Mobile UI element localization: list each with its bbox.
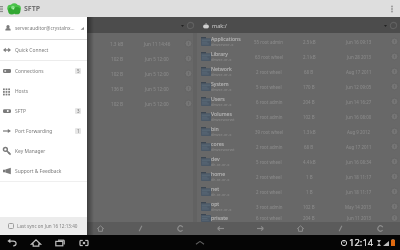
button[interactable]: File info: [184, 39, 193, 48]
button[interactable]: Open navigation drawer: [0, 0, 6, 17]
staticText: 2.1 kB: [303, 54, 316, 60]
button[interactable]: Status: 12:14: [341, 236, 397, 249]
button[interactable]: net: [197, 184, 400, 199]
button[interactable]: Support & Feedback: [0, 161, 87, 181]
button[interactable]: File info: [184, 99, 193, 108]
button[interactable]: Last sync on Jun 16 12:13:40: [0, 217, 87, 235]
button[interactable]: cores: [197, 139, 400, 154]
button[interactable]: File info: [390, 214, 399, 222]
button[interactable]: Key Manager: [0, 141, 87, 161]
staticText: Port Forwarding: [15, 128, 53, 135]
staticText: 3 root admin: [256, 114, 283, 120]
button[interactable]: Show notifications: [193, 236, 207, 250]
button[interactable]: Root folder: [320, 222, 360, 235]
button[interactable]: File info: [184, 84, 193, 93]
button[interactable]: File info: [390, 172, 399, 181]
staticText: cores: [211, 140, 225, 147]
button[interactable]: Back: [0, 235, 24, 250]
staticText: 68 B: [304, 144, 314, 150]
button[interactable]: File info: [184, 69, 193, 78]
button[interactable]: Screenshot: [72, 235, 96, 250]
button[interactable]: Copy to local: [200, 222, 240, 235]
button[interactable]: Root folder: [120, 222, 160, 235]
staticText: 68 B: [304, 69, 314, 75]
button[interactable]: home: [197, 169, 400, 184]
button[interactable]: File info: [390, 67, 399, 76]
button[interactable]: File info: [390, 142, 399, 151]
staticText: Aug 17 2011: [346, 144, 372, 150]
staticText: Jun 5 12:00: [145, 71, 169, 77]
button[interactable]: 102 B: [0, 96, 193, 111]
staticText: Jun 16 09:13: [346, 39, 372, 45]
staticText: 39 root wheel: [255, 129, 284, 135]
button[interactable]: File info: [390, 157, 399, 166]
button[interactable]: File info: [390, 37, 399, 46]
button[interactable]: Home: [80, 222, 120, 235]
button[interactable]: File info: [390, 202, 399, 211]
button[interactable]: Network: [197, 64, 400, 79]
button[interactable]: File info: [390, 112, 399, 121]
button[interactable]: File info: [390, 97, 399, 106]
button[interactable]: More options: [384, 0, 400, 17]
button[interactable]: 102 B: [0, 51, 193, 66]
button[interactable]: File info: [390, 82, 399, 91]
staticText: dr-xr-xr-x: [211, 177, 230, 183]
button[interactable]: File info: [390, 187, 399, 196]
button[interactable]: Hosts: [0, 81, 87, 101]
staticText: drwxr-xr-x: [211, 57, 232, 63]
button[interactable]: Home: [280, 222, 320, 235]
button[interactable]: Refresh: [160, 222, 200, 235]
button[interactable]: dev: [197, 154, 400, 169]
button[interactable]: opt: [197, 199, 400, 214]
button[interactable]: Connections: [0, 61, 87, 81]
staticText: Jun 5 12:00: [145, 56, 169, 62]
button[interactable]: Copy to remote: [240, 222, 280, 235]
button[interactable]: server.auditor@crystalnx...: [0, 17, 87, 39]
staticText: Jun 16 08:34: [346, 159, 372, 165]
staticText: System: [211, 80, 229, 87]
staticText: 1.3 kB: [303, 129, 316, 135]
staticText: 2 root admin: [256, 144, 283, 150]
staticText: SFTP: [24, 4, 41, 14]
button[interactable]: private: [197, 214, 400, 222]
button[interactable]: 1.3 kB: [0, 36, 193, 51]
button[interactable]: Applications: [197, 34, 400, 49]
staticText: dr-xr-xr-x: [211, 192, 230, 198]
staticText: Jun 11 14:46: [144, 41, 171, 47]
button[interactable]: File info: [184, 54, 193, 63]
staticText: Aug 9 2012: [347, 129, 371, 135]
staticText: 3: [77, 108, 80, 114]
staticText: mak:/: [212, 22, 227, 29]
button[interactable]: File info: [390, 127, 399, 136]
staticText: 5 root wheel: [256, 84, 282, 90]
staticText: 5: [77, 68, 80, 74]
staticText: Jun 5 12:00: [145, 86, 169, 92]
staticText: drwxr-xr-x: [211, 87, 232, 93]
button[interactable]: Library: [197, 49, 400, 64]
button[interactable]: Recent apps: [48, 235, 72, 250]
button[interactable]: bin: [197, 124, 400, 139]
button[interactable]: Quick Connect: [0, 40, 87, 60]
staticText: opt: [211, 200, 220, 207]
staticText: Volumes: [211, 110, 232, 117]
button[interactable]: Home: [24, 235, 48, 250]
button[interactable]: 136 B: [0, 81, 193, 96]
staticText: Jun 18 11:17: [346, 189, 372, 195]
staticText: drwxrwxrwt: [211, 147, 235, 153]
button[interactable]: 102 B: [0, 66, 193, 81]
button[interactable]: SFTP: [0, 101, 87, 121]
staticText: 102 B: [303, 114, 315, 120]
staticText: Connections: [15, 68, 44, 75]
staticText: Jun 12 09:05: [346, 84, 372, 90]
button[interactable]: Volumes: [197, 109, 400, 124]
staticText: Last sync on Jun 16 12:13:40: [17, 223, 78, 229]
button[interactable]: System: [197, 79, 400, 94]
staticText: 63 root wheel: [255, 54, 284, 60]
staticText: Hosts: [15, 88, 29, 95]
button[interactable]: Refresh: [360, 222, 400, 235]
staticText: 170 B: [303, 84, 315, 90]
button[interactable]: Users: [197, 94, 400, 109]
button[interactable]: File info: [390, 52, 399, 61]
button[interactable]: Port Forwarding: [0, 121, 87, 141]
